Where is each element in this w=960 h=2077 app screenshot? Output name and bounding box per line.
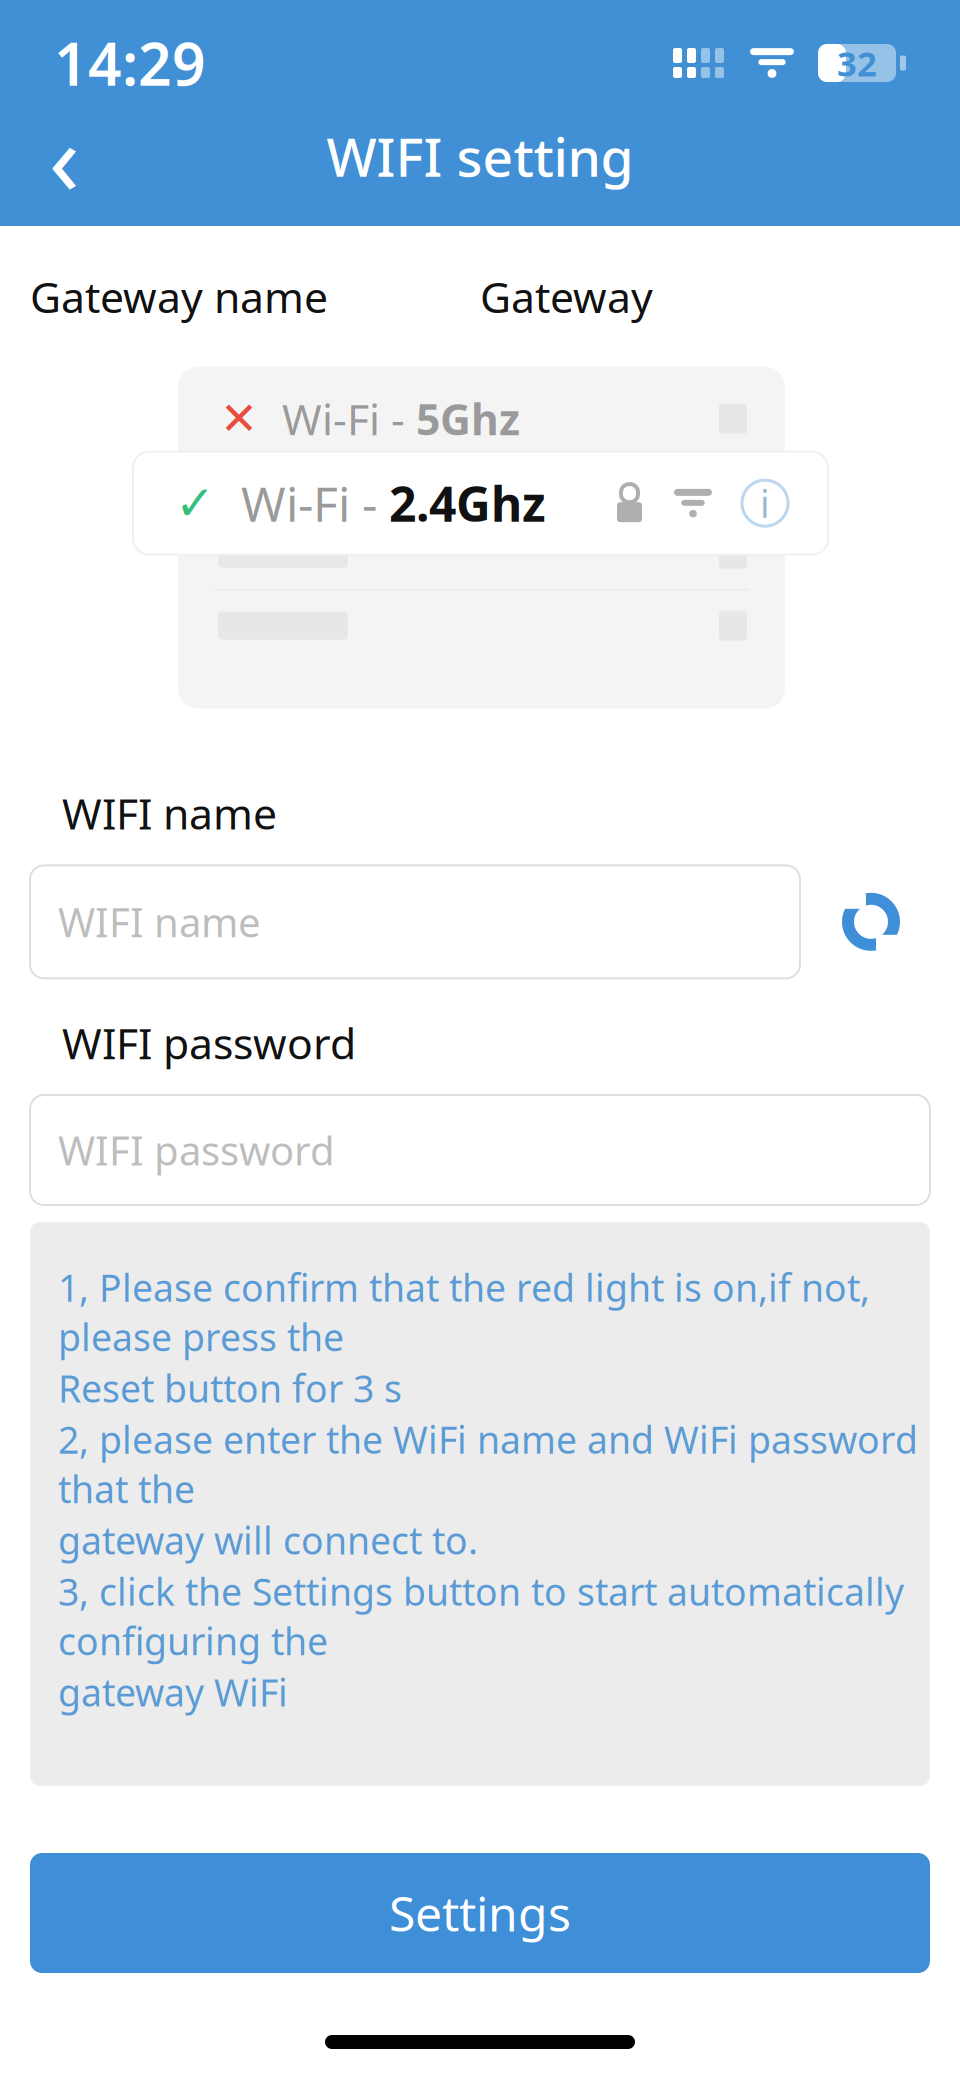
staticText: WIFI password: [58, 1123, 335, 1176]
staticText: 2, please enter the WiFi name and WiFi p…: [58, 1414, 918, 1514]
staticText: 3, click the Settings button to start au…: [58, 1566, 904, 1666]
staticText: 1, Please confirm that the red light is …: [58, 1262, 870, 1362]
button[interactable]: ✓: [133, 452, 828, 555]
staticText: 32: [837, 40, 877, 86]
staticText: Reset button for 3 s: [58, 1363, 402, 1413]
staticText: 2.4Ghz: [389, 471, 546, 535]
staticText: Gateway name: [30, 268, 328, 325]
staticText: WIFI setting: [326, 121, 633, 191]
staticText: ✓: [175, 476, 215, 530]
staticText: Wi-Fi -: [282, 390, 416, 447]
staticText: gateway WiFi: [58, 1667, 288, 1717]
staticText: WIFI name: [62, 785, 277, 841]
staticText: i: [760, 478, 770, 528]
staticText: gateway will connect to.: [58, 1515, 478, 1565]
staticText: 14:29: [54, 24, 206, 102]
button[interactable]: Refresh: [826, 877, 916, 967]
staticText: Wi-Fi -: [241, 471, 389, 535]
staticText: ✕: [220, 393, 258, 444]
button[interactable]: Settings: [30, 1853, 930, 1973]
staticText: WIFI name: [58, 895, 261, 948]
staticText: 5Ghz: [416, 390, 520, 447]
staticText: Gateway: [480, 268, 653, 325]
button[interactable]: Back: [20, 112, 108, 200]
staticText: ‹: [48, 89, 79, 223]
staticText: WIFI password: [62, 1014, 356, 1071]
staticText: Settings: [389, 1881, 571, 1945]
